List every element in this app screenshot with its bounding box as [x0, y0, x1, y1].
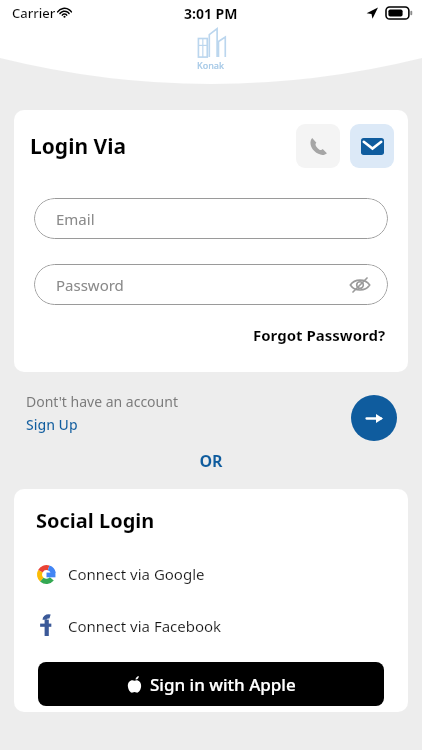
staticText: 3:01 PM — [184, 4, 238, 23]
staticText: Sign in with Apple — [150, 673, 296, 696]
staticText: Dont't have an account — [26, 392, 178, 411]
staticText: Email — [56, 209, 95, 229]
button[interactable]: Forgot Password? — [253, 323, 408, 349]
button[interactable]: Sign Up — [26, 415, 78, 434]
button[interactable]: Continue — [351, 395, 397, 441]
button[interactable]: Login with email — [350, 124, 394, 168]
staticText: Social Login — [36, 507, 155, 534]
staticText: Carrier — [12, 4, 56, 22]
staticText: Sign Up — [26, 415, 78, 434]
staticText: Forgot Password? — [253, 325, 386, 345]
staticText: OR — [199, 450, 223, 472]
button[interactable]: Connect via Google — [14, 556, 408, 592]
button[interactable]: Connect via Facebook — [14, 608, 408, 644]
staticText: Password — [56, 275, 124, 295]
button[interactable]: Login with phone — [296, 124, 340, 168]
staticText: Konak — [197, 59, 225, 71]
button[interactable]: Show password — [346, 271, 374, 299]
button[interactable]: Password — [34, 264, 388, 305]
staticText: Connect via Facebook — [68, 616, 222, 636]
staticText: Connect via Google — [68, 564, 205, 584]
button[interactable]: Email — [34, 198, 388, 239]
button[interactable]: Sign in with Apple — [38, 662, 384, 706]
staticText: Login Via — [30, 132, 127, 161]
